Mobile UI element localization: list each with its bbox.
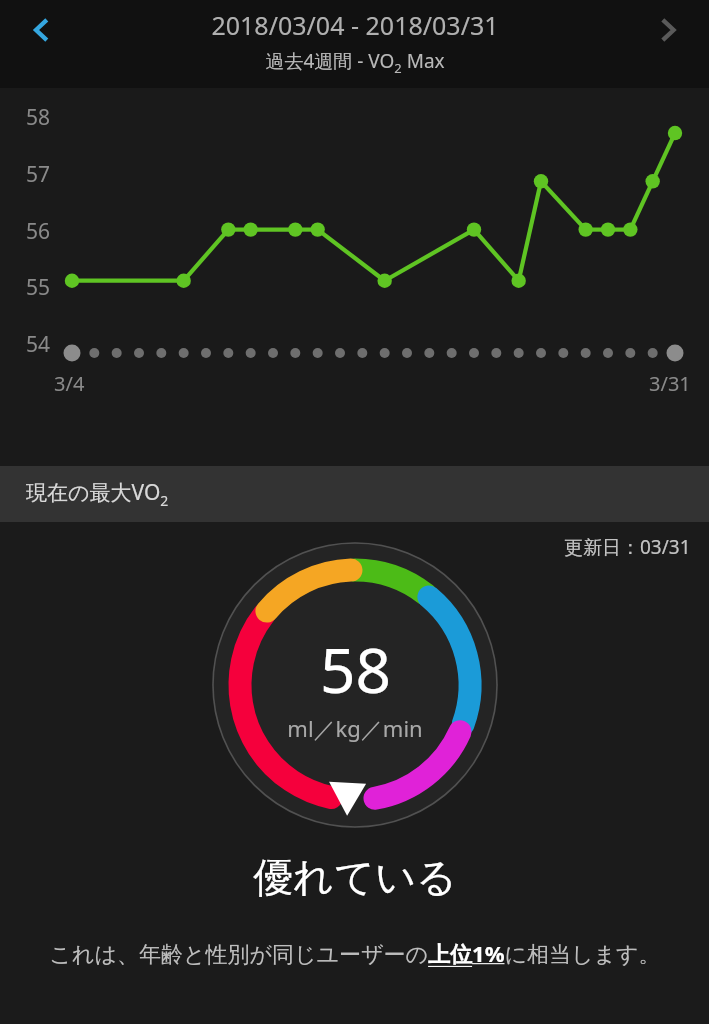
staticText: ml／kg／min: [287, 713, 423, 743]
button[interactable]: Previous period: [14, 2, 70, 58]
button[interactable]: Next period: [639, 2, 695, 58]
button[interactable]: 現在の最大VO2: [0, 466, 709, 522]
staticText: これは、年齢と性別が同じユーザーの上位1%に相当します。: [49, 938, 661, 968]
staticText: 56: [26, 217, 51, 246]
staticText: 2018/03/04 - 2018/03/31: [211, 8, 499, 42]
staticText: 更新日：03/31: [564, 534, 691, 560]
staticText: 過去4週間 - VO2 Max: [265, 48, 445, 77]
staticText: 現在の最大VO2: [26, 478, 169, 510]
staticText: 3/31: [649, 370, 691, 397]
staticText: 58: [26, 103, 51, 132]
staticText: 3/4: [54, 370, 85, 397]
staticText: 57: [26, 160, 51, 189]
staticText: 58: [320, 627, 391, 711]
button[interactable]: 58: [210, 540, 500, 830]
staticText: 優れている: [253, 852, 457, 902]
staticText: 54: [26, 330, 51, 359]
staticText: 55: [26, 273, 51, 302]
